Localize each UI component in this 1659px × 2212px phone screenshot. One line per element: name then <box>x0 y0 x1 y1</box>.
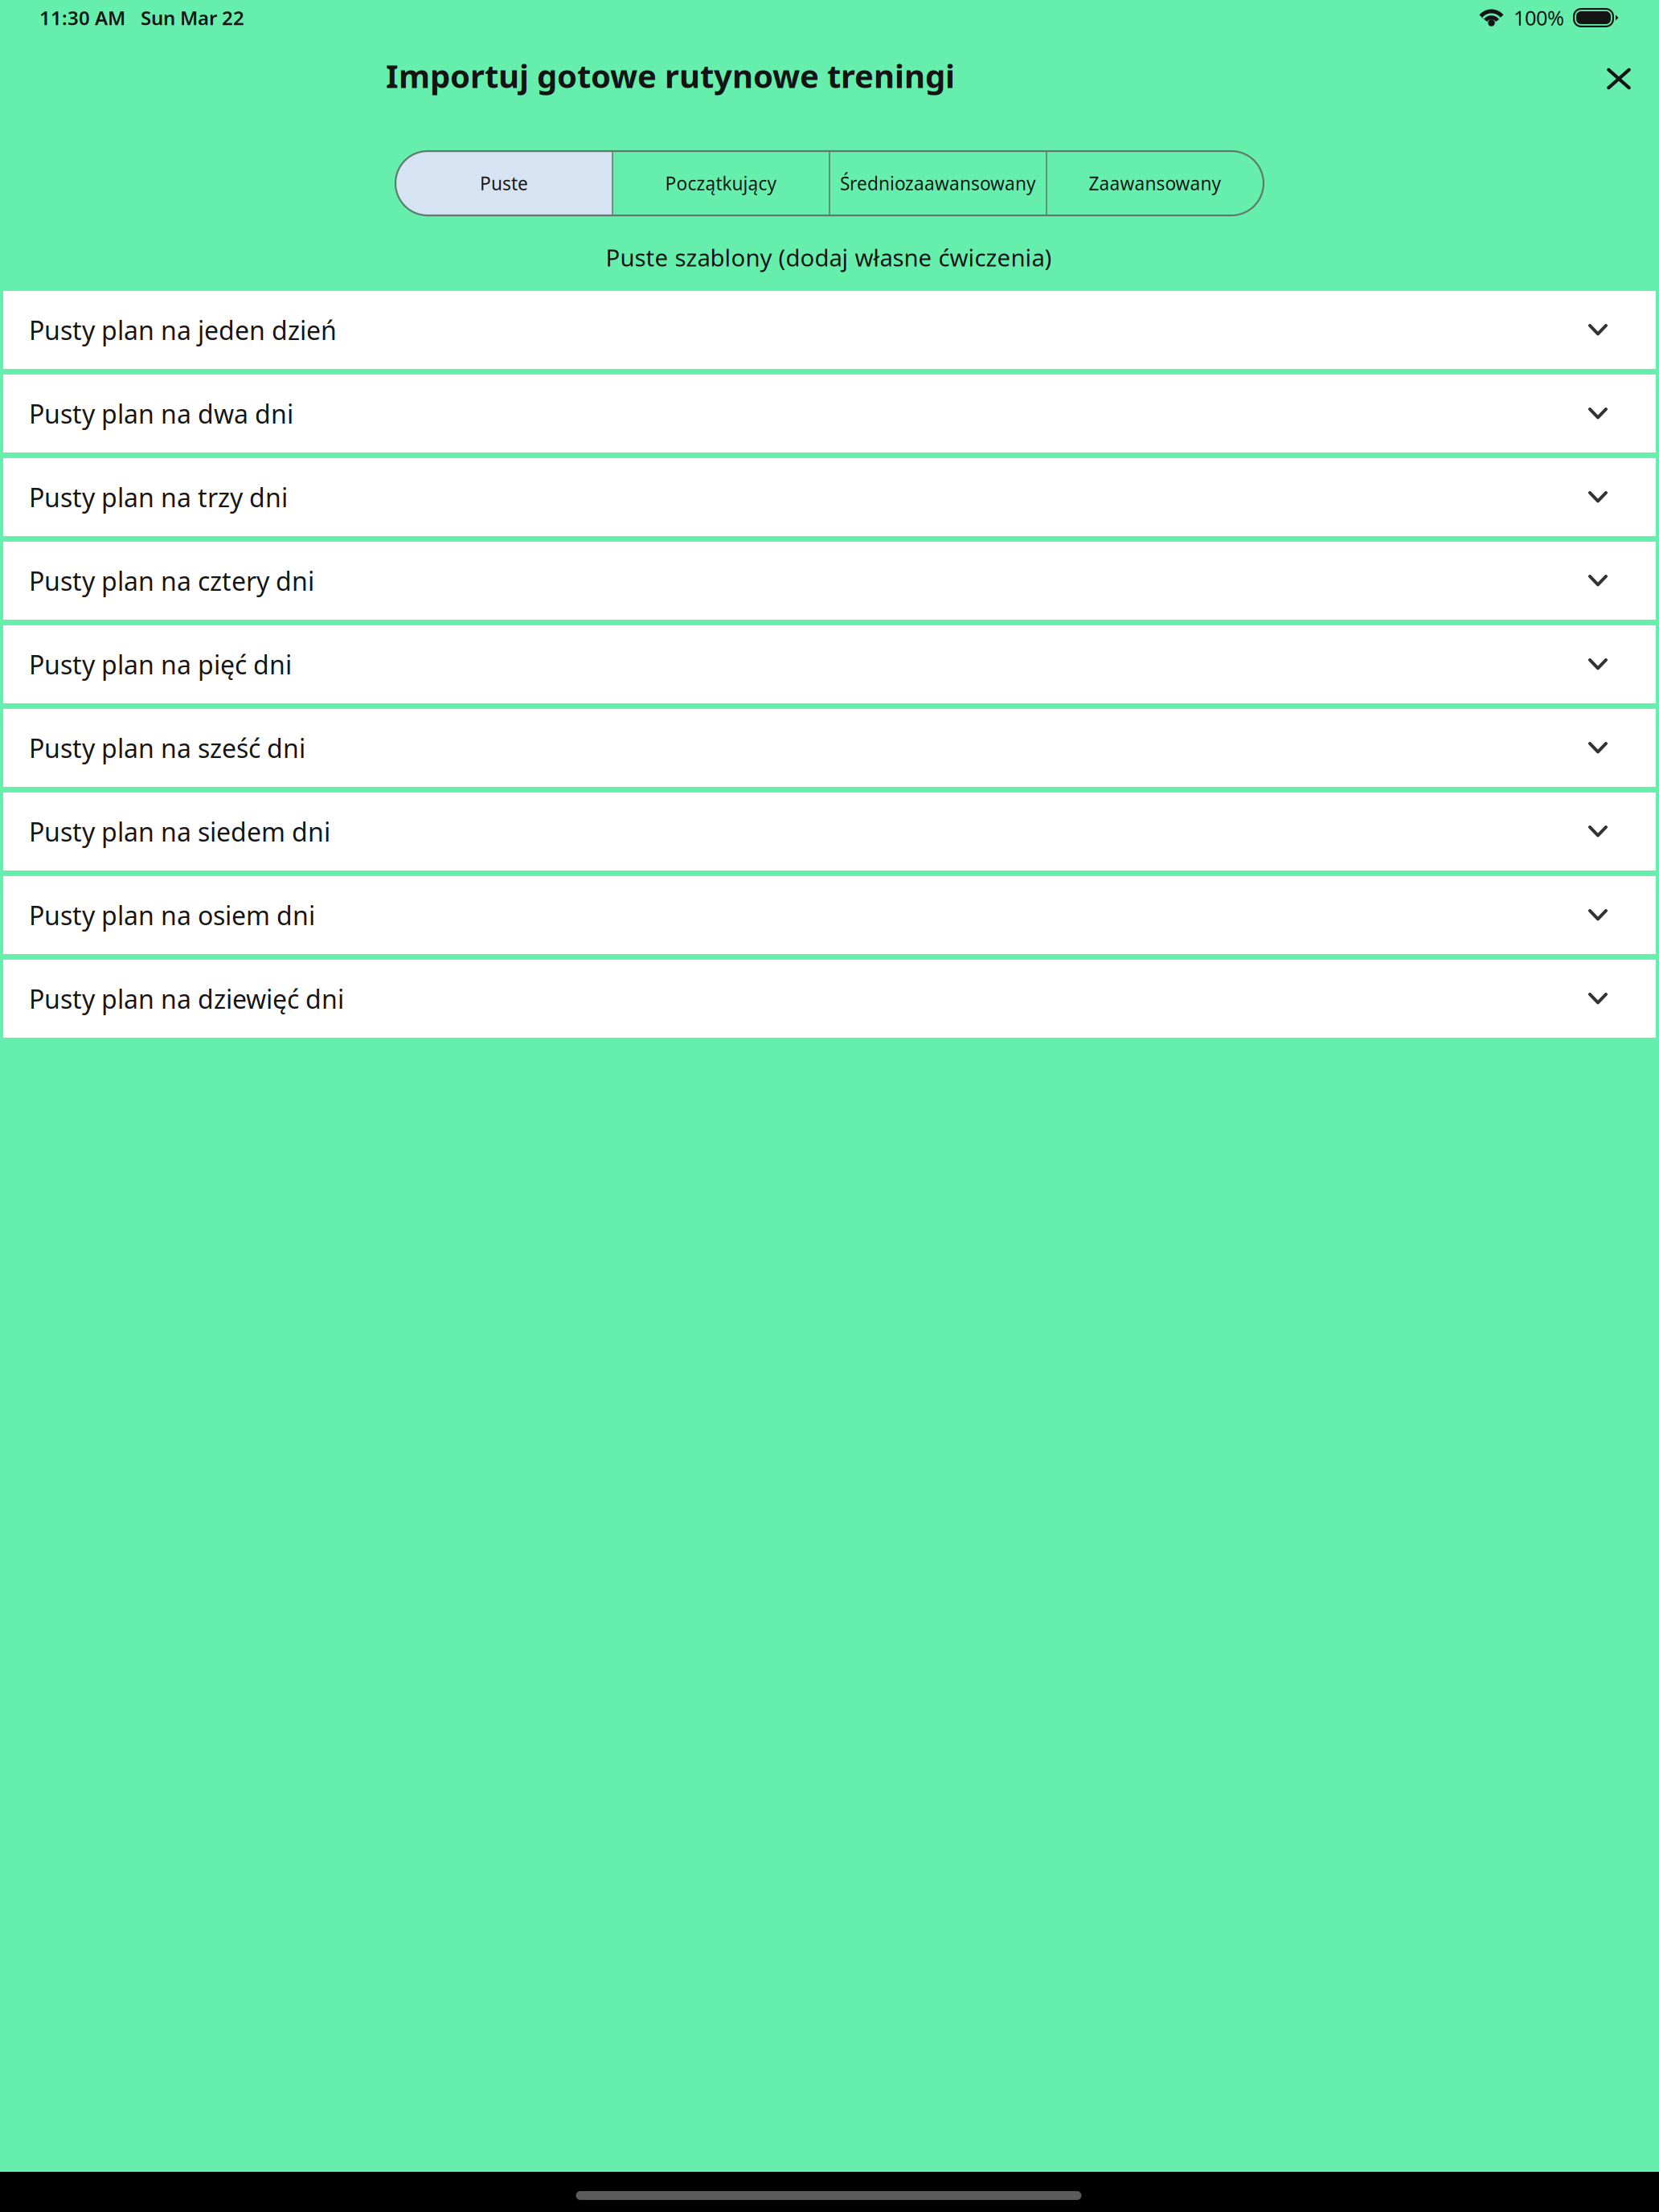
button[interactable]: Pusty plan na dwa dni <box>3 375 1656 453</box>
button[interactable]: Zaawansowany <box>1047 151 1264 215</box>
staticText: Puste szablony (dodaj własne ćwiczenia) <box>606 242 1052 273</box>
staticText: Pusty plan na siedem dni <box>29 814 330 849</box>
staticText: Pusty plan na osiem dni <box>29 898 315 932</box>
staticText: Początkujący <box>665 171 777 195</box>
button[interactable]: Pusty plan na dziewięć dni <box>3 960 1656 1038</box>
staticText: Zaawansowany <box>1089 171 1221 195</box>
button[interactable]: Close <box>1583 43 1654 114</box>
button[interactable]: Średniozaawansowany <box>829 151 1047 215</box>
staticText: Puste <box>480 171 528 195</box>
staticText: Pusty plan na dziewięć dni <box>29 982 344 1016</box>
button[interactable]: Początkujący <box>612 151 829 215</box>
staticText: Sun Mar 22 <box>141 5 244 31</box>
button[interactable]: Puste <box>395 151 612 215</box>
staticText: Średniozaawansowany <box>840 171 1036 195</box>
staticText: Pusty plan na trzy dni <box>29 480 288 514</box>
staticText: Pusty plan na sześć dni <box>29 731 305 765</box>
button[interactable]: Pusty plan na trzy dni <box>3 458 1656 536</box>
staticText: Pusty plan na dwa dni <box>29 397 293 431</box>
staticText: Importuj gotowe rutynowe treningi <box>386 54 955 97</box>
staticText: 100% <box>1514 4 1564 31</box>
staticText: 11:30 AM <box>39 5 125 31</box>
button[interactable]: Pusty plan na jeden dzień <box>3 291 1656 369</box>
staticText: Pusty plan na jeden dzień <box>29 313 337 347</box>
staticText: Pusty plan na pięć dni <box>29 647 292 681</box>
button[interactable]: Pusty plan na pięć dni <box>3 625 1656 703</box>
staticText: Pusty plan na cztery dni <box>29 564 314 598</box>
button[interactable]: Pusty plan na cztery dni <box>3 542 1656 620</box>
button[interactable]: Pusty plan na osiem dni <box>3 876 1656 954</box>
button[interactable]: Pusty plan na siedem dni <box>3 793 1656 870</box>
button[interactable]: Pusty plan na sześć dni <box>3 709 1656 787</box>
